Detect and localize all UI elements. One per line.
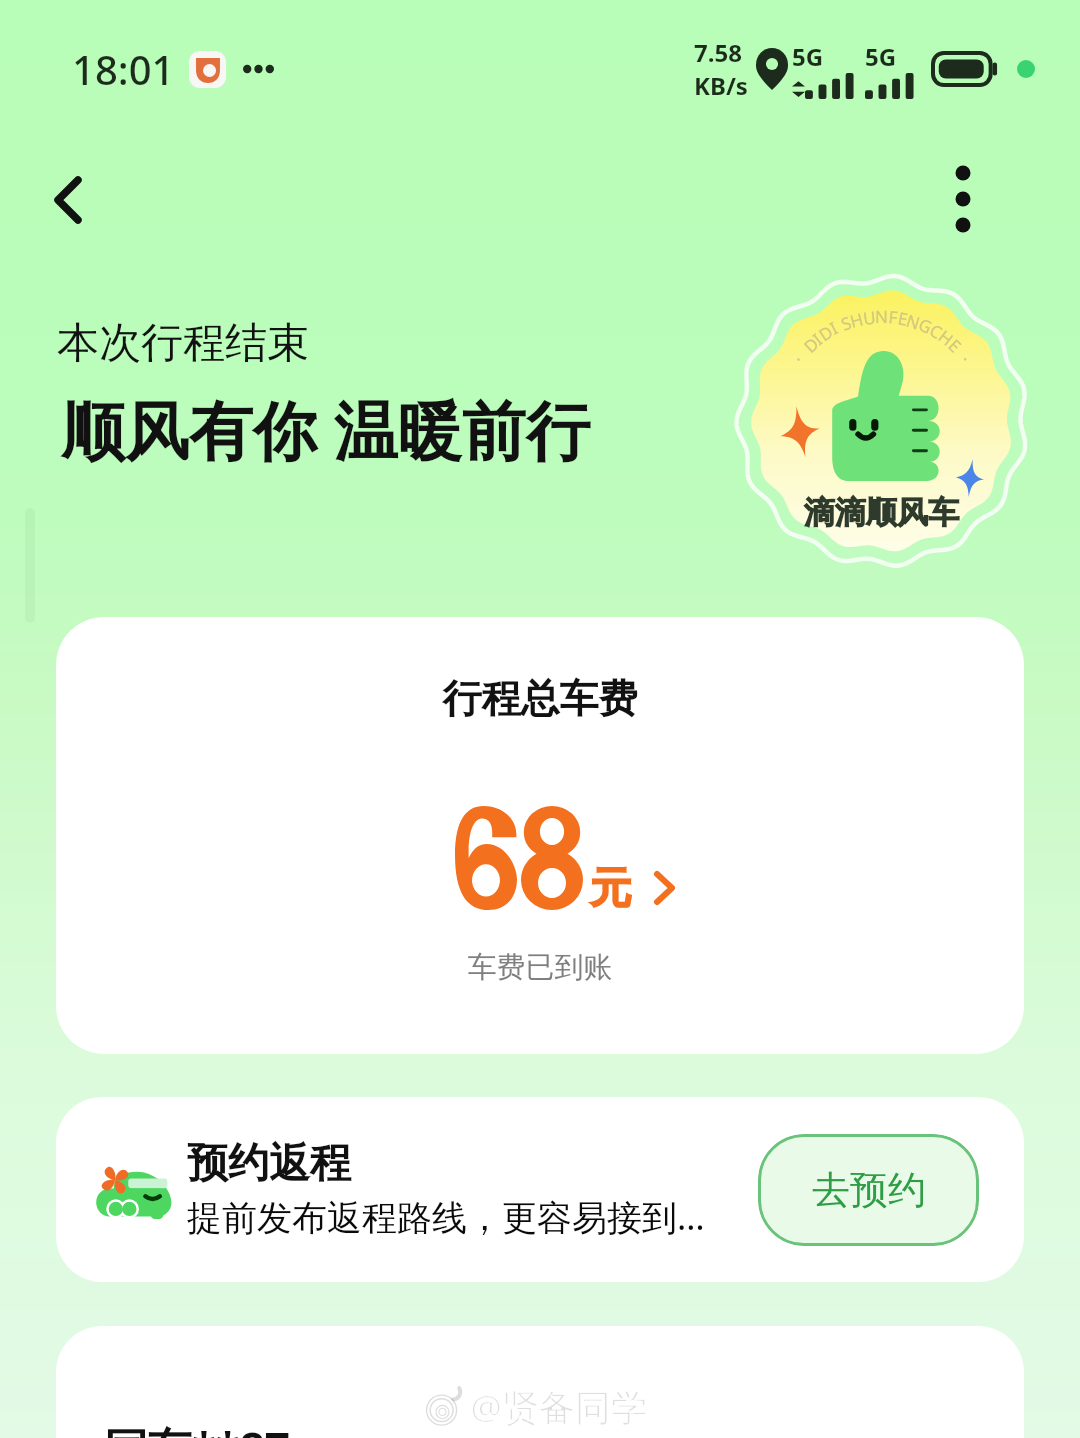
staticText: 18:01 bbox=[72, 42, 175, 96]
button[interactable]: 去预约 bbox=[758, 1134, 979, 1246]
staticText: 行程总车费 bbox=[56, 674, 1024, 723]
button[interactable]: Back bbox=[24, 156, 112, 244]
staticText: 元 bbox=[590, 862, 632, 915]
staticText: 滴滴顺风车 bbox=[804, 493, 959, 532]
staticText: 5G bbox=[865, 40, 897, 73]
staticText: @贤备同学 bbox=[470, 1383, 647, 1432]
staticText: KB/s bbox=[694, 69, 748, 102]
button[interactable]: 行程总车费 bbox=[56, 617, 1024, 1054]
staticText: 5G bbox=[792, 40, 824, 73]
staticText: 预约返程 bbox=[187, 1138, 351, 1190]
button[interactable]: 预约返程 bbox=[56, 1097, 1024, 1282]
staticText: 本次行程结束 bbox=[57, 317, 309, 370]
staticText: 去预约 bbox=[812, 1166, 926, 1214]
staticText: 提前发布返程路线，更容易接到… bbox=[187, 1193, 705, 1241]
staticText: 车费已到账 bbox=[56, 949, 1024, 986]
staticText: 顺风有你 温暖前行 bbox=[61, 386, 590, 473]
button[interactable]: More options bbox=[919, 155, 1007, 243]
staticText: 7.58 bbox=[694, 36, 742, 69]
button[interactable]: 同车**87 bbox=[56, 1326, 1024, 1438]
staticText: 同车**87 bbox=[104, 1418, 291, 1438]
staticText: @贤备同学 bbox=[470, 1383, 647, 1432]
